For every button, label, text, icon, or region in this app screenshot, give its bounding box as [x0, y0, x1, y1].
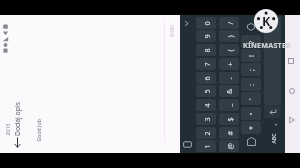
- button[interactable]: Back: [286, 114, 298, 126]
- staticText: ;: [246, 69, 256, 71]
- button[interactable]: [241, 20, 261, 33]
- staticText: ?: [246, 40, 256, 44]
- button[interactable]: Back: [13, 137, 22, 148]
- staticText: @: [224, 142, 234, 149]
- staticText: !: [246, 55, 256, 57]
- staticText: 9: [201, 33, 211, 38]
- button[interactable]: More suggestions: [183, 20, 190, 27]
- staticText: K: [262, 13, 271, 30]
- staticText: KINEMASTER: [243, 40, 292, 50]
- button[interactable]: 5: [196, 85, 216, 97]
- staticText: 6: [201, 75, 211, 80]
- button[interactable]: $: [219, 113, 239, 125]
- button[interactable]: 6: [196, 72, 216, 84]
- button[interactable]: 2: [196, 127, 216, 139]
- staticText: /: [224, 21, 234, 24]
- button[interactable]: (: [219, 44, 239, 56]
- staticText: 8: [201, 47, 211, 52]
- button[interactable]: ": [241, 107, 261, 120]
- button[interactable]: :: [241, 78, 261, 91]
- staticText: 1: [201, 143, 211, 148]
- staticText: Good Job: [34, 118, 41, 141]
- staticText: _: [224, 103, 234, 107]
- button[interactable]: -: [219, 72, 239, 84]
- button[interactable]: 3: [196, 113, 216, 125]
- button[interactable]: _: [219, 99, 239, 111]
- staticText: 0/300: [169, 25, 175, 37]
- staticText: -: [224, 76, 234, 79]
- staticText: 5: [201, 88, 211, 93]
- staticText: (: [224, 48, 234, 51]
- button[interactable]: ABC: [264, 132, 281, 145]
- button[interactable]: 1: [196, 140, 216, 152]
- button[interactable]: /: [219, 17, 239, 29]
- button[interactable]: Home: [286, 85, 298, 97]
- button[interactable]: !: [241, 49, 261, 62]
- staticText: Dodaj opis: [13, 102, 22, 136]
- staticText: +: [224, 61, 234, 66]
- button[interactable]: Switch keyboard: [183, 140, 192, 149]
- staticText: ): [224, 34, 234, 37]
- staticText: ,: [268, 123, 277, 125]
- button[interactable]: #: [219, 127, 239, 139]
- button[interactable]: [241, 135, 261, 148]
- button[interactable]: 9: [196, 30, 216, 42]
- button[interactable]: ': [241, 92, 261, 105]
- button[interactable]: 7: [196, 58, 216, 70]
- staticText: #: [224, 130, 234, 135]
- staticText: 7: [201, 61, 211, 66]
- button[interactable]: &: [219, 85, 239, 97]
- button[interactable]: [264, 105, 281, 118]
- staticText: 0: [201, 20, 211, 25]
- staticText: 3: [201, 116, 211, 121]
- staticText: 2: [201, 130, 211, 135]
- button[interactable]: 4: [196, 99, 216, 111]
- button[interactable]: +: [219, 58, 239, 70]
- button[interactable]: Space: [264, 16, 281, 105]
- staticText: &: [224, 88, 234, 94]
- staticText: *: [246, 126, 256, 130]
- button[interactable]: ,: [264, 118, 281, 131]
- staticText: 4: [201, 102, 211, 107]
- staticText: :: [246, 84, 256, 86]
- button[interactable]: 0: [196, 17, 216, 29]
- button[interactable]: ;: [241, 63, 261, 76]
- staticText: 20:13: [4, 123, 10, 135]
- button[interactable]: *: [241, 121, 261, 134]
- button[interactable]: ?: [241, 35, 261, 48]
- button[interactable]: Recent apps: [285, 55, 297, 67]
- button[interactable]: ): [219, 30, 239, 42]
- staticText: ABC: [269, 133, 276, 143]
- button[interactable]: @: [219, 140, 239, 152]
- staticText: ": [246, 112, 256, 115]
- button[interactable]: 8: [196, 44, 216, 56]
- staticText: $: [224, 116, 234, 121]
- staticText: ': [246, 98, 256, 100]
